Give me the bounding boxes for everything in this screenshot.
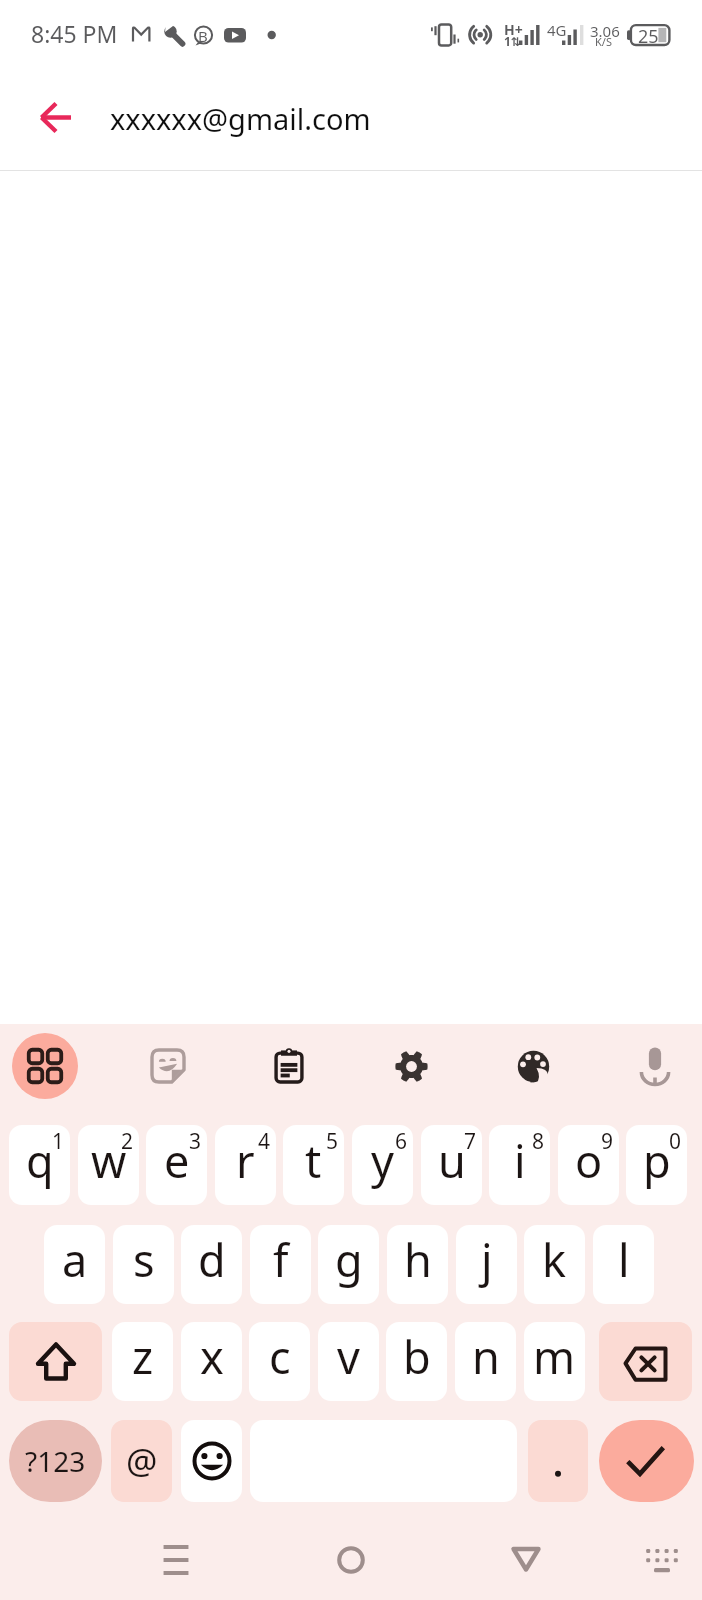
button[interactable]: d [181,1225,242,1304]
button[interactable]: Back [15,77,95,157]
staticText: s [133,1229,155,1290]
button[interactable]: Period [528,1420,588,1502]
staticText: H+ [504,20,523,39]
staticText: e [164,1130,190,1191]
staticText: u [438,1130,466,1191]
staticText: d [198,1229,226,1290]
staticText: c [269,1326,291,1387]
staticText: 1⇅ [504,33,521,49]
staticText: t [305,1130,322,1191]
button[interactable]: Voice input [622,1033,688,1099]
staticText: xxxxxx@gmail.com [110,99,371,138]
button[interactable]: c [249,1322,310,1401]
button[interactable]: Emoji [181,1420,242,1502]
button[interactable]: Home [321,1530,381,1590]
staticText: w [91,1130,127,1191]
staticText: 5 [326,1127,339,1156]
staticText: 25 [638,24,659,49]
button[interactable]: a [44,1225,105,1304]
staticText: o [575,1130,603,1191]
staticText: x [200,1326,224,1387]
staticText: 8:45 PM [31,18,118,49]
staticText: f [273,1229,289,1290]
staticText: ?123 [25,1442,86,1480]
button[interactable]: Recents [146,1530,206,1590]
button[interactable]: l [593,1225,654,1304]
button[interactable]: z [112,1322,173,1401]
button[interactable]: q [9,1125,70,1205]
staticText: p [643,1130,671,1191]
button[interactable]: b [386,1322,447,1401]
button[interactable]: @ [111,1420,172,1502]
staticText: 3 [189,1127,202,1156]
button[interactable]: Themes [500,1033,566,1099]
staticText: 1 [52,1127,65,1156]
button[interactable]: i [489,1125,550,1205]
staticText: 2 [121,1127,134,1156]
button[interactable]: j [456,1225,517,1304]
button[interactable]: Back [496,1530,556,1590]
staticText: 7 [464,1127,477,1156]
staticText: 4G [547,20,567,40]
button[interactable]: ?123 [9,1420,102,1502]
button[interactable]: Hide keyboard [632,1530,692,1590]
button[interactable]: e [146,1125,207,1205]
button[interactable]: Backspace [599,1322,692,1401]
staticText: 8 [532,1127,545,1156]
staticText: B [198,26,208,46]
staticText: l [618,1229,630,1290]
button[interactable]: Clipboard [256,1033,322,1099]
staticText: z [132,1326,154,1387]
button[interactable]: Shift [9,1322,102,1401]
staticText: j [481,1229,493,1290]
button[interactable]: Apps [12,1033,78,1099]
button[interactable]: o [558,1125,619,1205]
staticText: h [404,1229,432,1290]
staticText: y [371,1130,394,1191]
staticText: r [236,1130,255,1191]
staticText: 9 [601,1127,614,1156]
staticText: 0 [669,1127,682,1156]
button[interactable]: u [421,1125,482,1205]
button[interactable]: n [455,1322,516,1401]
button[interactable]: m [524,1322,585,1401]
staticText: n [472,1326,500,1387]
button[interactable]: Stickers [135,1033,201,1099]
staticText: a [62,1229,88,1290]
staticText: g [335,1229,363,1290]
staticText: v [337,1326,360,1387]
staticText: 4 [258,1127,271,1156]
staticText: @ [126,1437,158,1485]
button[interactable]: x [181,1322,242,1401]
staticText: 3.06 [590,21,620,41]
button[interactable]: g [318,1225,379,1304]
staticText: b [403,1326,431,1387]
button[interactable]: r [215,1125,276,1205]
button[interactable]: f [250,1225,311,1304]
staticText: m [533,1326,576,1387]
button[interactable]: t [283,1125,344,1205]
button[interactable]: w [78,1125,139,1205]
staticText: 6 [395,1127,408,1156]
button[interactable]: Enter [599,1420,694,1502]
staticText: K/S [595,34,612,49]
staticText: k [542,1229,567,1290]
staticText: q [26,1130,54,1191]
staticText: i [514,1130,526,1191]
button[interactable]: h [387,1225,448,1304]
button[interactable]: y [352,1125,413,1205]
button[interactable]: v [318,1322,379,1401]
button[interactable]: k [524,1225,585,1304]
button[interactable]: Settings [378,1033,444,1099]
button[interactable]: p [626,1125,687,1205]
button[interactable]: s [113,1225,174,1304]
